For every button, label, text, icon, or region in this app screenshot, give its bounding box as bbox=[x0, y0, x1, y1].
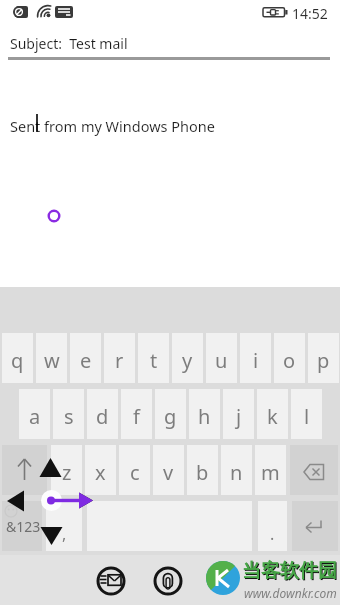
button[interactable]: a bbox=[19, 389, 50, 439]
staticText: f bbox=[133, 403, 140, 430]
staticText: www.downkr.com bbox=[244, 585, 337, 601]
staticText: &123 bbox=[6, 517, 41, 536]
button[interactable]: t bbox=[138, 333, 169, 383]
staticText: v bbox=[163, 459, 174, 486]
button[interactable]: e bbox=[70, 333, 101, 383]
button[interactable]: o bbox=[274, 333, 305, 383]
staticText: p bbox=[317, 347, 330, 374]
staticText: n bbox=[230, 459, 243, 486]
staticText: l bbox=[304, 403, 310, 430]
staticText: b bbox=[196, 459, 209, 486]
staticText: , bbox=[62, 523, 67, 545]
staticText: z bbox=[62, 459, 72, 486]
staticText: x bbox=[95, 459, 106, 486]
button[interactable]: f bbox=[121, 389, 152, 439]
staticText: d bbox=[96, 403, 109, 430]
button[interactable]: i bbox=[240, 333, 271, 383]
staticText: j bbox=[236, 403, 242, 430]
button[interactable]: c bbox=[119, 445, 150, 495]
staticText: m bbox=[261, 459, 280, 486]
button[interactable]: h bbox=[189, 389, 220, 439]
button[interactable]: , bbox=[46, 501, 82, 551]
staticText: t bbox=[150, 347, 158, 374]
staticText: i bbox=[253, 347, 259, 374]
button[interactable] bbox=[2, 501, 42, 551]
staticText: u bbox=[215, 347, 228, 374]
staticText: r bbox=[115, 347, 124, 374]
staticText: h bbox=[198, 403, 211, 430]
button[interactable]: q bbox=[2, 333, 33, 383]
button[interactable]: j bbox=[223, 389, 254, 439]
staticText: c bbox=[130, 459, 140, 486]
button[interactable]: b bbox=[187, 445, 218, 495]
staticText: Subject: Test mail bbox=[10, 34, 128, 53]
staticText: 当客软件园 bbox=[243, 560, 338, 584]
button[interactable]: y bbox=[172, 333, 203, 383]
button[interactable]: m bbox=[255, 445, 286, 495]
staticText: g bbox=[164, 403, 177, 430]
button[interactable]: g bbox=[155, 389, 186, 439]
button[interactable]: v bbox=[153, 445, 184, 495]
staticText: 当客软件园 bbox=[242, 559, 337, 583]
staticText: Sent from my Windows Phone bbox=[10, 116, 215, 136]
staticText: w bbox=[44, 347, 60, 374]
button[interactable] bbox=[292, 501, 338, 551]
button[interactable] bbox=[87, 501, 252, 551]
button[interactable]: s bbox=[53, 389, 84, 439]
staticText: o bbox=[283, 347, 296, 374]
button[interactable]: p bbox=[308, 333, 339, 383]
staticText: 14:52 bbox=[292, 4, 328, 23]
button[interactable]: Sent from my Windows Phone bbox=[0, 60, 340, 287]
button[interactable]: x bbox=[85, 445, 116, 495]
button[interactable]: n bbox=[221, 445, 252, 495]
button[interactable]: k bbox=[257, 389, 288, 439]
button[interactable]: l bbox=[291, 389, 322, 439]
staticText: . bbox=[270, 523, 275, 545]
staticText: y bbox=[182, 347, 193, 374]
button[interactable] bbox=[96, 566, 126, 596]
button[interactable] bbox=[2, 445, 47, 495]
staticText: s bbox=[64, 403, 74, 430]
staticText: q bbox=[11, 347, 24, 374]
button[interactable]: . bbox=[258, 501, 287, 551]
button[interactable]: w bbox=[36, 333, 67, 383]
staticText: k bbox=[267, 403, 278, 430]
button[interactable] bbox=[290, 445, 338, 495]
button[interactable]: z bbox=[51, 445, 82, 495]
button[interactable]: r bbox=[104, 333, 135, 383]
button[interactable]: Subject: Test mail bbox=[0, 30, 340, 60]
button[interactable]: d bbox=[87, 389, 118, 439]
staticText: a bbox=[29, 403, 41, 430]
staticText: e bbox=[80, 347, 92, 374]
button[interactable]: u bbox=[206, 333, 237, 383]
button[interactable] bbox=[153, 566, 183, 596]
